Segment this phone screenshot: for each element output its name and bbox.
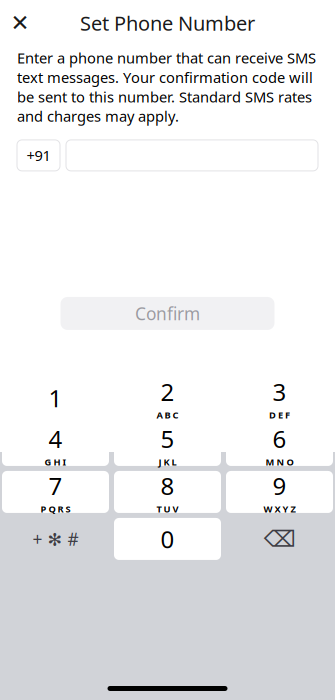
button[interactable]: Symbols [2, 518, 109, 560]
staticText: +91 [26, 146, 50, 165]
button[interactable]: 9 [226, 471, 333, 513]
staticText: 7 [48, 470, 62, 502]
staticText: D E F [269, 409, 290, 421]
staticText: 0 [160, 523, 174, 555]
button[interactable]: 6 [226, 424, 333, 466]
button[interactable]: 0 [114, 518, 221, 560]
staticText: ⌫ [263, 526, 295, 552]
staticText: M N O [265, 456, 293, 468]
button[interactable]: +91 [17, 140, 60, 171]
staticText: 8 [160, 470, 174, 502]
staticText: Confirm [135, 302, 200, 325]
staticText: 4 [48, 423, 62, 455]
button[interactable]: Delete [226, 518, 333, 560]
staticText: A B C [156, 409, 178, 421]
staticText: J K L [158, 456, 176, 468]
button[interactable]: Confirm [60, 297, 274, 330]
staticText: 1 [48, 382, 62, 414]
button[interactable]: 7 [2, 471, 109, 513]
button[interactable]: 8 [114, 471, 221, 513]
staticText: ✕ [10, 10, 29, 36]
staticText: T U V [156, 503, 178, 515]
staticText: + ✻ # [32, 527, 78, 550]
staticText: Set Phone Number [80, 10, 255, 36]
button[interactable]: 2 [114, 377, 221, 419]
button[interactable]: 1 [2, 377, 109, 419]
staticText: 3 [272, 376, 286, 408]
button[interactable]: 3 [226, 377, 333, 419]
button[interactable]: Phone number [66, 140, 318, 171]
staticText: P Q R S [40, 503, 70, 515]
staticText: W X Y Z [263, 503, 295, 515]
staticText: 6 [272, 423, 286, 455]
staticText: 5 [160, 423, 174, 455]
button[interactable]: 5 [114, 424, 221, 466]
staticText: 2 [160, 376, 174, 408]
staticText: G H I [44, 456, 66, 468]
staticText: Enter a phone number that can receive SM… [17, 48, 316, 126]
button[interactable]: 4 [2, 424, 109, 466]
button[interactable]: Close [0, 6, 40, 40]
staticText: 9 [272, 470, 286, 502]
